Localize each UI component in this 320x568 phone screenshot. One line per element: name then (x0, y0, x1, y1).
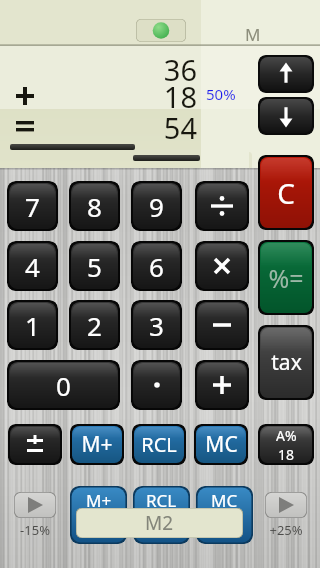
button[interactable]: M+ (70, 424, 124, 465)
button[interactable] (131, 360, 182, 410)
button[interactable]: 1 (7, 300, 58, 350)
button[interactable]: MC (194, 424, 248, 465)
button[interactable]: 6 (131, 241, 182, 291)
button[interactable] (8, 424, 62, 465)
staticText: 7 (25, 189, 40, 224)
staticText: 54 (0, 108, 197, 147)
staticText: 18 (0, 77, 197, 116)
staticText: 50% (206, 84, 236, 104)
staticText: 1 (25, 308, 40, 343)
button[interactable]: 2 (69, 300, 120, 350)
staticText: 36 (0, 50, 197, 89)
staticText: tax (271, 348, 302, 377)
button[interactable]: Scroll down (258, 97, 314, 135)
staticText: RCL (146, 489, 177, 512)
button[interactable]: M2 (76, 508, 243, 538)
button[interactable]: Plus 25 percent (265, 492, 307, 518)
staticText: M+ (81, 430, 113, 459)
button[interactable]: RCL (132, 424, 186, 465)
button[interactable]: 3 (131, 300, 182, 350)
button[interactable]: 9 (131, 181, 182, 231)
staticText: 2 (87, 308, 102, 343)
staticText: A% (276, 426, 297, 445)
staticText: M+ (86, 489, 112, 512)
button[interactable]: 8 (69, 181, 120, 231)
staticText: 6 (149, 249, 164, 284)
staticText: 3 (149, 308, 164, 343)
button[interactable]: 5 (69, 241, 120, 291)
staticText: M2 (145, 510, 174, 536)
staticText: 18 (278, 445, 295, 464)
staticText: -15% (14, 521, 56, 539)
staticText: 0 (56, 368, 71, 403)
button[interactable]: RCL (133, 486, 190, 544)
button[interactable]: M+ (70, 486, 127, 544)
button[interactable]: 4 (7, 241, 58, 291)
staticText: MC (205, 430, 238, 459)
staticText: +25% (265, 521, 307, 539)
button[interactable]: 7 (7, 181, 58, 231)
staticText: MC (211, 489, 238, 512)
button[interactable]: Power indicator (136, 19, 186, 42)
button[interactable]: Minus 15 percent (14, 492, 56, 518)
staticText: 4 (25, 249, 40, 284)
button[interactable]: tax (258, 325, 314, 400)
button[interactable] (195, 300, 249, 350)
staticText: RCL (141, 431, 177, 458)
staticText: C (277, 174, 295, 212)
button[interactable]: 0 (7, 360, 120, 410)
button[interactable]: MC (196, 486, 253, 544)
staticText: 8 (87, 189, 102, 224)
button[interactable]: Scroll up (258, 55, 314, 93)
button[interactable]: C (258, 155, 314, 230)
button[interactable] (195, 241, 249, 291)
staticText: 5 (87, 249, 102, 284)
staticText: %= (268, 261, 304, 295)
button[interactable]: A% (258, 424, 314, 465)
staticText: M (245, 23, 261, 46)
button[interactable] (195, 360, 249, 410)
button[interactable] (195, 181, 249, 231)
button[interactable]: %= (258, 240, 314, 315)
staticText: 9 (149, 189, 164, 224)
